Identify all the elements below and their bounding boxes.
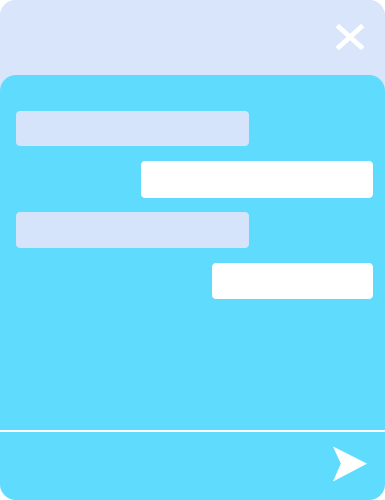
button[interactable]: Close bbox=[328, 15, 372, 59]
button[interactable]: Send bbox=[324, 438, 376, 490]
